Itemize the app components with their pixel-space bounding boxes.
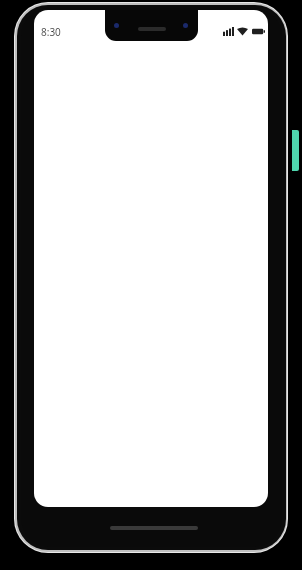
staticText: 8:30 <box>41 25 61 39</box>
button[interactable]: Power <box>292 130 299 171</box>
button[interactable]: Home <box>110 526 198 530</box>
